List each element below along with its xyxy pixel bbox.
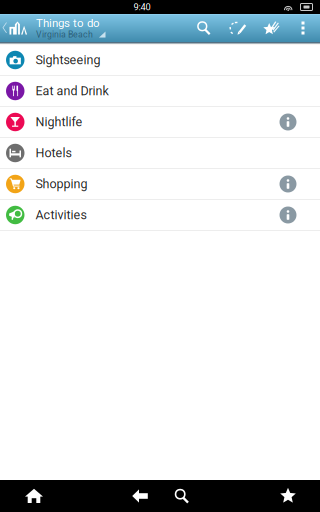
staticText: Eat and Drink bbox=[35, 84, 108, 98]
button[interactable]: Search bbox=[187, 14, 221, 42]
staticText: Virginia Beach bbox=[36, 29, 93, 40]
staticText: Activities bbox=[35, 208, 86, 222]
button[interactable]: Nightlife bbox=[0, 107, 320, 138]
button[interactable]: Things to do bbox=[36, 15, 106, 41]
button[interactable]: More info about this category bbox=[274, 107, 302, 137]
button[interactable]: Home bbox=[12, 480, 56, 512]
button[interactable]: Back bbox=[119, 480, 161, 512]
staticText: Nightlife bbox=[35, 115, 82, 129]
button[interactable]: Favorites bbox=[255, 14, 289, 42]
button[interactable]: Sightseeing bbox=[0, 45, 320, 76]
button[interactable]: Customize bbox=[221, 14, 255, 42]
staticText: Shopping bbox=[35, 177, 87, 191]
button[interactable]: More info about this category bbox=[274, 200, 302, 230]
button[interactable]: Search bbox=[161, 480, 203, 512]
staticText: Hotels bbox=[35, 146, 71, 160]
button[interactable]: More info about this category bbox=[274, 169, 302, 199]
button[interactable]: Shopping bbox=[0, 169, 320, 200]
button[interactable]: Eat and Drink bbox=[0, 76, 320, 107]
button[interactable]: Hotels bbox=[0, 138, 320, 169]
staticText: 9:40 bbox=[133, 1, 150, 12]
button[interactable]: Back to home bbox=[0, 14, 30, 42]
button[interactable]: More options bbox=[289, 14, 317, 42]
button[interactable]: Activities bbox=[0, 200, 320, 231]
button[interactable]: Favorites bbox=[266, 480, 310, 512]
staticText: Sightseeing bbox=[35, 53, 100, 67]
staticText: Things to do bbox=[36, 16, 100, 30]
